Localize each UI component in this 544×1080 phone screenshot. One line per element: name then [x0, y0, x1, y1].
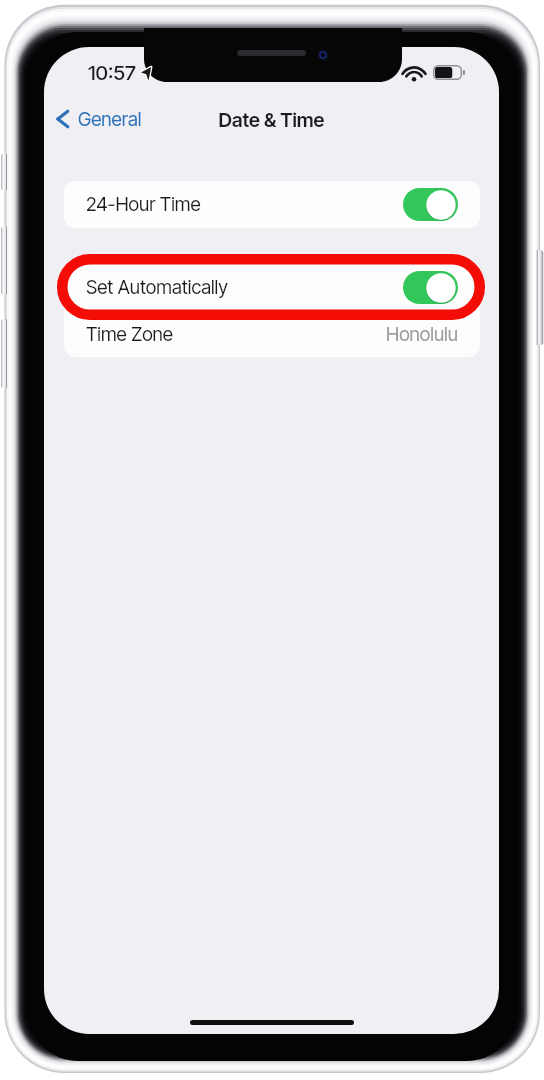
- button[interactable]: 24-Hour Time: [64, 181, 480, 228]
- staticText: General: [78, 108, 142, 131]
- staticText: 24-Hour Time: [86, 193, 201, 216]
- button[interactable]: Time Zone: [64, 311, 480, 357]
- staticText: Honolulu: [386, 323, 458, 346]
- button[interactable]: 24-Hour Time switch, on: [403, 188, 458, 221]
- button[interactable]: Set Automatically: [64, 264, 480, 311]
- button[interactable]: General: [54, 104, 142, 134]
- staticText: Time Zone: [86, 323, 173, 346]
- button[interactable]: Set Automatically switch, on: [403, 271, 458, 304]
- staticText: Set Automatically: [86, 276, 228, 299]
- staticText: 10:57: [88, 60, 136, 85]
- staticText: Date & Time: [44, 108, 499, 132]
